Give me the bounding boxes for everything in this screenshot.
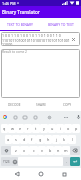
staticText: t [35, 126, 37, 131]
staticText: u [51, 126, 54, 131]
button[interactable]: ?123 [1, 157, 11, 166]
staticText: g [39, 137, 42, 142]
button[interactable]: Backspace [70, 146, 80, 155]
button[interactable]: v [38, 146, 46, 155]
button[interactable]: c [29, 146, 38, 155]
staticText: . [66, 159, 68, 164]
button[interactable]: d [20, 135, 28, 144]
button[interactable]: a [5, 135, 12, 144]
button[interactable]: Home [35, 168, 47, 180]
button[interactable]: Clear text [71, 37, 76, 42]
button[interactable]: w [8, 124, 16, 133]
button[interactable]: q [1, 124, 8, 133]
button[interactable]: Emoji [11, 157, 18, 166]
staticText: k [63, 137, 66, 142]
staticText: a [7, 137, 10, 142]
button[interactable]: SHARE [28, 98, 54, 111]
staticText: ?123 [3, 160, 10, 164]
button[interactable]: TEXT TO BINARY [0, 18, 40, 30]
button[interactable]: p [72, 124, 80, 133]
staticText: m [64, 148, 68, 153]
button[interactable]: n [54, 146, 62, 155]
staticText: x [23, 148, 26, 153]
button[interactable]: m [62, 146, 70, 155]
button[interactable]: Settings [46, 114, 52, 120]
button[interactable]: GIF [22, 114, 28, 120]
button[interactable]: b [46, 146, 54, 155]
staticText: s [15, 137, 17, 142]
staticText: n [57, 148, 60, 153]
staticText: DECODE [8, 103, 21, 107]
staticText: 1 0 0 1 1 0 1 0 0 1 0 1 1 0 1 0 0 1 1 0 … [2, 33, 70, 46]
staticText: SHARE [36, 103, 46, 107]
button[interactable]: COPY [54, 98, 80, 111]
button[interactable]: Shift [1, 146, 11, 155]
button[interactable]: DECODE [1, 98, 28, 111]
button[interactable]: g [36, 135, 44, 144]
staticText: BINARY TO TEXT [48, 22, 74, 27]
button[interactable]: t [32, 124, 40, 133]
button[interactable]: f [28, 135, 36, 144]
button[interactable]: h [44, 135, 52, 144]
staticText: o [67, 126, 70, 131]
button[interactable]: BINARY TO TEXT [40, 18, 81, 30]
button[interactable]: j [52, 135, 60, 144]
button[interactable]: . [63, 157, 70, 166]
staticText: p [75, 126, 78, 131]
staticText: COPY [63, 103, 72, 107]
staticText: z [15, 148, 17, 153]
staticText: l [72, 137, 73, 142]
button[interactable]: o [64, 124, 72, 133]
staticText: v [41, 148, 43, 153]
button[interactable]: s [12, 135, 20, 144]
staticText: f [31, 137, 33, 142]
button[interactable]: Back [11, 168, 23, 180]
staticText: i [60, 126, 61, 131]
button[interactable]: Clipboard [32, 114, 38, 120]
staticText: d [23, 137, 26, 142]
button[interactable]: x [20, 146, 29, 155]
button[interactable]: Voice input [75, 114, 81, 120]
staticText: y [43, 126, 45, 131]
staticText: c [33, 148, 35, 153]
staticText: w [11, 126, 14, 131]
button[interactable]: i [56, 124, 64, 133]
button[interactable]: u [48, 124, 56, 133]
button[interactable]: e [16, 124, 24, 133]
button[interactable]: Stickers [12, 114, 18, 120]
staticText: Binary Translator [2, 9, 40, 15]
button[interactable]: More options [63, 114, 69, 120]
staticText: r [27, 126, 29, 131]
staticText: e [19, 126, 22, 131]
button[interactable]: z [11, 146, 20, 155]
button[interactable]: Recent apps [58, 168, 70, 180]
staticText: h [47, 137, 50, 142]
staticText: b [49, 148, 52, 153]
button[interactable]: Enter [70, 157, 80, 166]
staticText: j [56, 137, 57, 142]
staticText: 1:46 PM [2, 1, 16, 6]
button[interactable]: r [24, 124, 32, 133]
staticText: Result to come 2 [2, 50, 27, 54]
staticText: TEXT TO BINARY [7, 22, 33, 27]
button[interactable]: l [68, 135, 76, 144]
button[interactable]: Google search [2, 114, 8, 120]
button[interactable]: y [40, 124, 48, 133]
staticText: q [3, 126, 6, 131]
button[interactable]: k [60, 135, 68, 144]
